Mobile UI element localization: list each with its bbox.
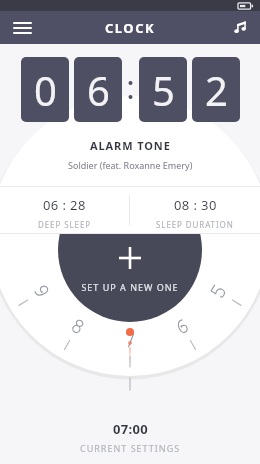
staticText: 08 : 30 xyxy=(174,196,217,214)
staticText: 06 : 28 xyxy=(43,196,86,214)
button[interactable]: Set up a new alarm xyxy=(0,0,260,464)
staticText: SET UP A NEW ONE xyxy=(81,281,179,293)
button[interactable]: 08 : 30 xyxy=(130,187,260,230)
button[interactable]: Alarm tone xyxy=(220,11,260,44)
staticText: CLOCK xyxy=(105,19,156,37)
button[interactable]: 06 : 28 xyxy=(0,187,129,230)
staticText: SLEEP DURATION xyxy=(156,219,234,230)
button[interactable]: Menu xyxy=(0,11,44,44)
button[interactable]: 2 xyxy=(192,57,240,122)
button[interactable]: ALARM TONE xyxy=(0,138,260,171)
staticText: 07:00 xyxy=(113,420,148,438)
staticText: 0 xyxy=(34,63,57,117)
staticText: 6 xyxy=(87,63,110,117)
button[interactable]: 0 xyxy=(21,57,69,122)
staticText: Soldier (feat. Roxanne Emery) xyxy=(68,159,193,171)
staticText: ALARM TONE xyxy=(90,138,171,153)
staticText: CURRENT SETTINGS xyxy=(80,442,181,454)
button[interactable]: 6 xyxy=(74,57,122,122)
staticText: 5 xyxy=(152,63,175,117)
staticText: DEEP SLEEP xyxy=(38,219,91,230)
staticText: 2 xyxy=(205,63,228,117)
button[interactable]: 5 xyxy=(139,57,187,122)
